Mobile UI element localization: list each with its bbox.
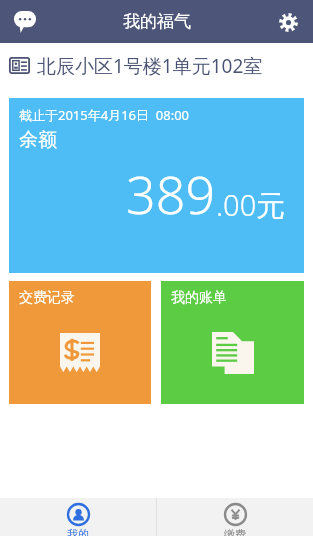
staticText: 我的福气 [123,11,191,32]
staticText: 我的 [67,527,89,536]
staticText: .00元 [216,185,286,225]
button[interactable]: Settings [271,5,305,39]
staticText: 我的账单 [171,289,227,307]
button[interactable]: Messages [8,5,42,39]
staticText: 389 [126,158,216,229]
button[interactable]: 我的账单 [161,281,304,404]
staticText: 北辰小区1号楼1单元102室 [37,53,263,79]
button[interactable]: 缴费 [157,498,313,536]
button[interactable]: 截止于2015年4月16日 08:00 [9,98,304,273]
staticText: 截止于2015年4月16日 08:00 [19,106,190,124]
staticText: 交费记录 [19,289,75,307]
button[interactable]: 我的 [0,498,156,536]
staticText: 余额 [19,128,57,152]
button[interactable]: 交费记录 [9,281,151,404]
button[interactable]: 北辰小区1号楼1单元102室 [0,43,313,88]
staticText: 缴费 [224,527,246,536]
